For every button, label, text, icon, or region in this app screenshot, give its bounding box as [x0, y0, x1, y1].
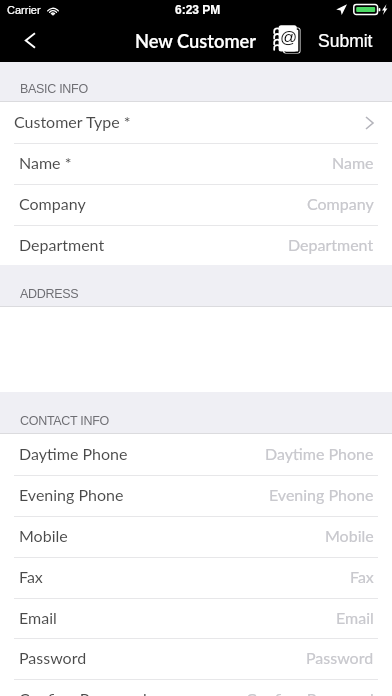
staticText: 6:23 PM — [175, 3, 221, 16]
staticText: @ — [280, 28, 298, 47]
staticText: New Customer — [135, 30, 257, 52]
staticText: Department — [19, 235, 105, 254]
staticText: Daytime Phone — [19, 444, 128, 463]
staticText: Carrier — [7, 4, 41, 16]
staticText: Email — [19, 608, 57, 627]
staticText: Confirm Password — [19, 689, 147, 696]
staticText: Customer Type * — [14, 112, 131, 131]
staticText: Department — [288, 235, 374, 254]
staticText: Confirm Password — [246, 689, 374, 696]
button[interactable]: Mobile — [0, 516, 392, 557]
staticText: Mobile — [325, 526, 374, 545]
staticText: Submit — [318, 31, 373, 51]
staticText: Evening Phone — [269, 485, 374, 504]
staticText: BASIC INFO — [20, 82, 88, 96]
button[interactable]: Name * — [0, 143, 392, 184]
button[interactable]: Email — [0, 598, 392, 638]
button[interactable]: Company — [0, 184, 392, 225]
staticText: Email — [336, 608, 374, 627]
button[interactable]: Customer Type * — [0, 102, 392, 143]
button[interactable]: Department — [0, 225, 392, 265]
staticText: Daytime Phone — [265, 444, 374, 463]
staticText: Company — [307, 194, 374, 213]
button[interactable]: Back — [0, 21, 54, 62]
staticText: Name — [332, 153, 374, 172]
staticText: ADDRESS — [20, 287, 79, 301]
button[interactable]: Password — [0, 638, 392, 679]
button[interactable]: Daytime Phone — [0, 434, 392, 475]
staticText: Name * — [19, 153, 72, 172]
staticText: Evening Phone — [19, 485, 124, 504]
button[interactable]: Confirm Password — [0, 679, 392, 696]
staticText: CONTACT INFO — [20, 414, 109, 428]
staticText: Fax — [19, 567, 43, 586]
button[interactable]: Evening Phone — [0, 475, 392, 516]
button[interactable]: Submit — [304, 21, 392, 62]
staticText: Password — [306, 648, 374, 667]
staticText: Mobile — [19, 526, 68, 545]
button[interactable]: Fax — [0, 557, 392, 598]
staticText: Password — [19, 648, 87, 667]
staticText: Company — [19, 194, 86, 213]
staticText: Fax — [350, 567, 374, 586]
